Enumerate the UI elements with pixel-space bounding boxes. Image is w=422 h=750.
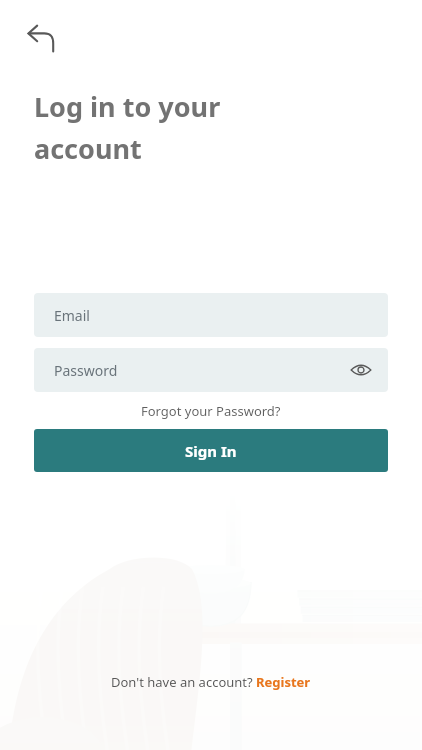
staticText: Sign In (185, 441, 237, 461)
staticText: Log in to your account (34, 88, 221, 167)
staticText: Don't have an account? Register (111, 673, 311, 691)
staticText: Forgot your Password? (141, 402, 281, 420)
button[interactable]: Email (34, 293, 388, 337)
staticText: Email (54, 306, 90, 325)
button[interactable]: Password (34, 348, 388, 392)
button[interactable]: Show password (346, 355, 376, 385)
staticText: Password (54, 361, 118, 380)
button[interactable]: Forgot your Password? (135, 400, 287, 422)
button[interactable]: Don't have an account? Register (101, 669, 321, 695)
button[interactable]: Sign In (34, 429, 388, 472)
button[interactable]: Back (21, 19, 61, 59)
